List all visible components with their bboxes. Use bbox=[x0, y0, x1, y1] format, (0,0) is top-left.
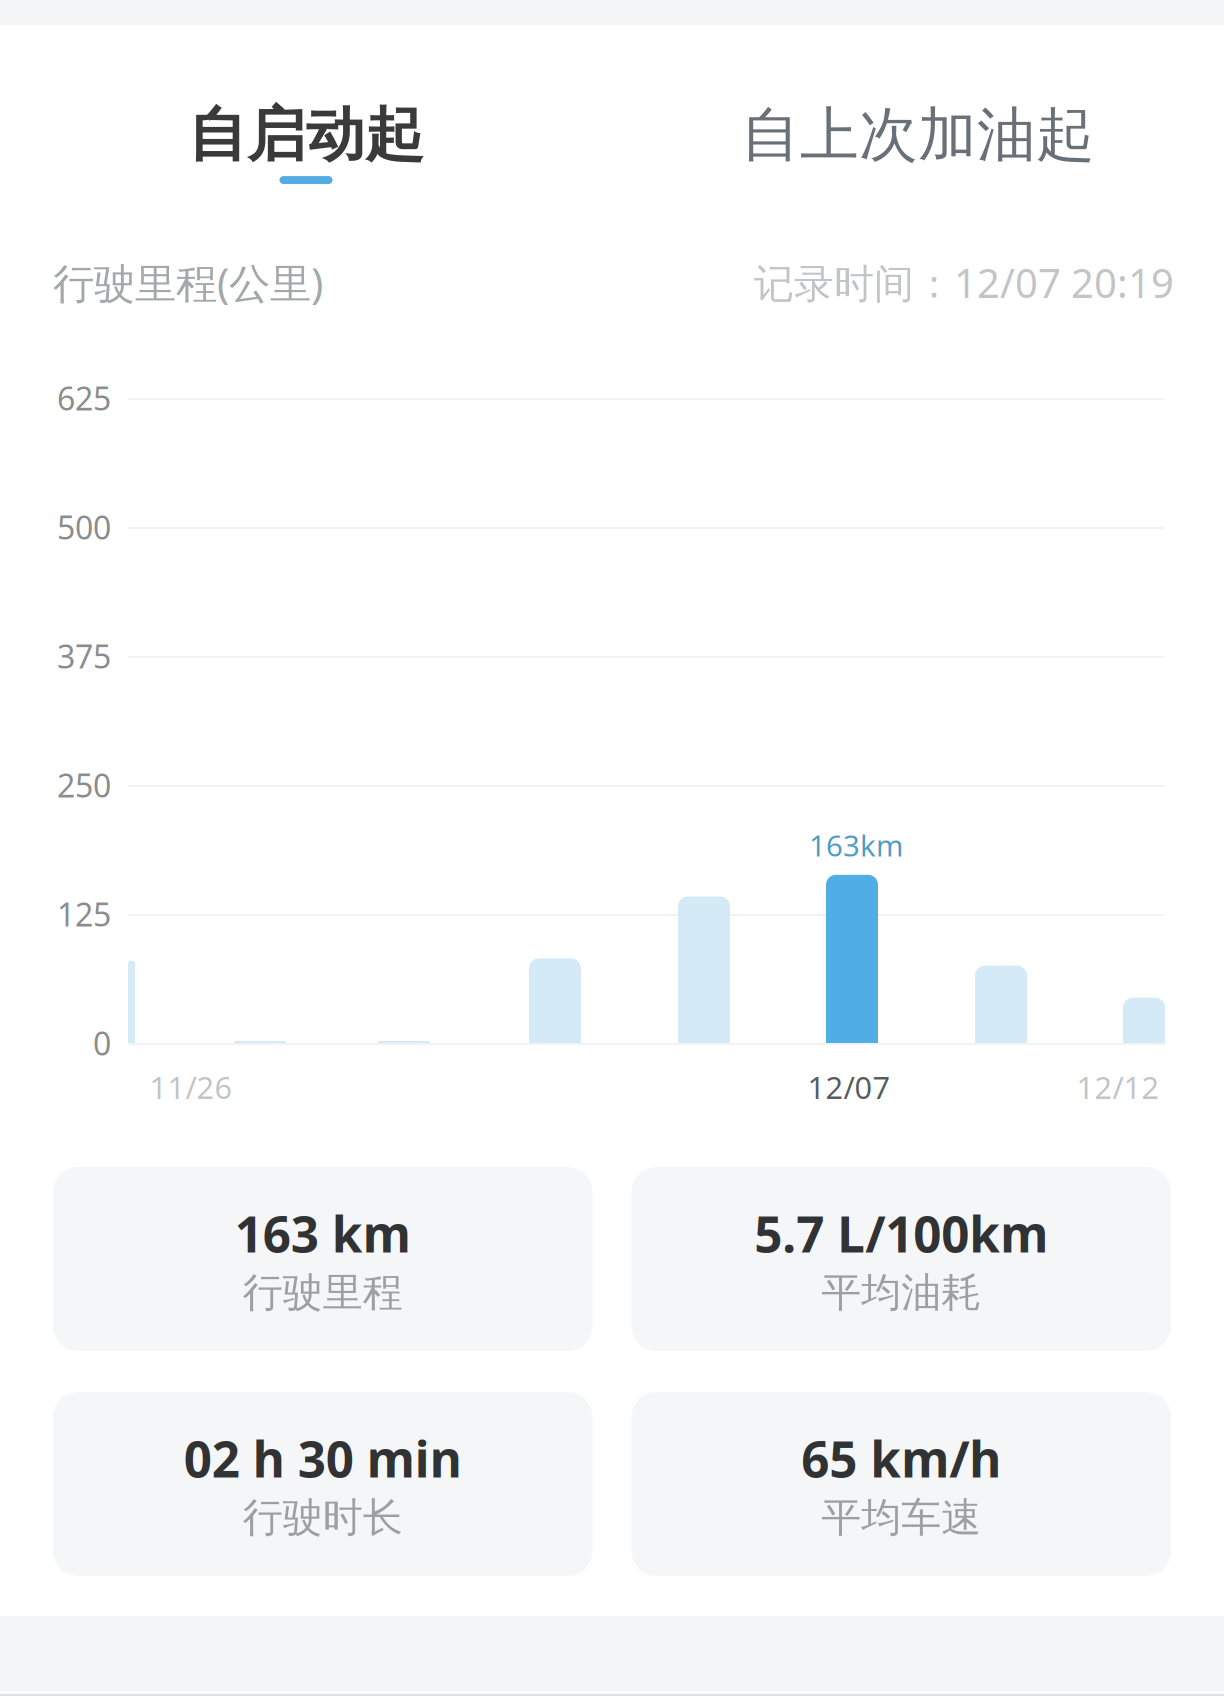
staticText: 12/07 bbox=[807, 1067, 890, 1107]
staticText: 65 km/h bbox=[801, 1426, 1001, 1491]
staticText: 02 h 30 min bbox=[184, 1426, 462, 1491]
button[interactable]: 65 km/h bbox=[631, 1392, 1171, 1576]
staticText: 375 bbox=[57, 635, 111, 677]
staticText: 500 bbox=[57, 506, 111, 548]
button[interactable]: 163 km bbox=[53, 1167, 592, 1351]
staticText: 163km bbox=[809, 825, 903, 864]
staticText: 12/12 bbox=[1076, 1067, 1159, 1107]
staticText: 平均车速 bbox=[821, 1493, 981, 1542]
button[interactable]: 02 h 30 min bbox=[53, 1392, 592, 1576]
staticText: 5.7 L/100km bbox=[754, 1201, 1048, 1266]
staticText: 0 bbox=[93, 1022, 111, 1064]
staticText: 11/26 bbox=[149, 1067, 232, 1107]
staticText: 625 bbox=[57, 377, 111, 419]
button[interactable]: 自启动起 bbox=[0, 95, 612, 188]
staticText: 记录时间：12/07 20:19 bbox=[754, 256, 1174, 309]
staticText: 250 bbox=[57, 764, 111, 806]
staticText: 行驶里程(公里) bbox=[53, 255, 323, 310]
staticText: 平均油耗 bbox=[821, 1268, 981, 1317]
staticText: 行驶里程 bbox=[243, 1268, 403, 1317]
staticText: 163 km bbox=[235, 1201, 411, 1266]
staticText: 行驶时长 bbox=[243, 1493, 403, 1542]
staticText: 自启动起 bbox=[188, 99, 424, 171]
staticText: 自上次加油起 bbox=[741, 99, 1095, 171]
button[interactable]: 5.7 L/100km bbox=[631, 1167, 1171, 1351]
button[interactable]: 自上次加油起 bbox=[612, 95, 1224, 188]
staticText: 125 bbox=[57, 893, 111, 935]
